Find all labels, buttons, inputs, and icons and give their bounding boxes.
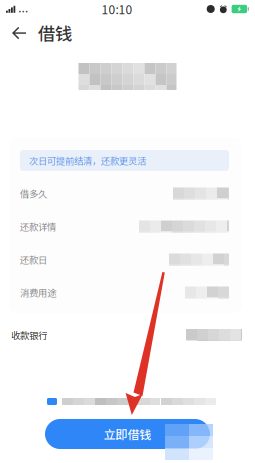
button[interactable]: 还款日 [9, 243, 242, 276]
button[interactable] [0, 395, 255, 408]
staticText: 借多久 [20, 187, 47, 200]
button[interactable]: 还款详情 [9, 210, 242, 243]
staticText: 还款日 [20, 253, 47, 266]
button[interactable]: 收款银行 [0, 313, 255, 357]
button[interactable]: 立即借钱 [45, 419, 210, 449]
staticText: 收款银行 [11, 328, 47, 342]
staticText: 立即借钱 [103, 425, 151, 443]
staticText: 借钱 [38, 20, 72, 46]
button[interactable]: 借多久 [9, 177, 242, 210]
staticText: 消费用途 [20, 286, 56, 299]
staticText: 10:10 [102, 0, 133, 18]
staticText: 次日可提前结清，还款更灵活 [29, 154, 146, 167]
staticText: 还款详情 [20, 220, 56, 233]
button[interactable]: 消费用途 [9, 276, 242, 309]
button[interactable]: 返回 [5, 18, 33, 48]
